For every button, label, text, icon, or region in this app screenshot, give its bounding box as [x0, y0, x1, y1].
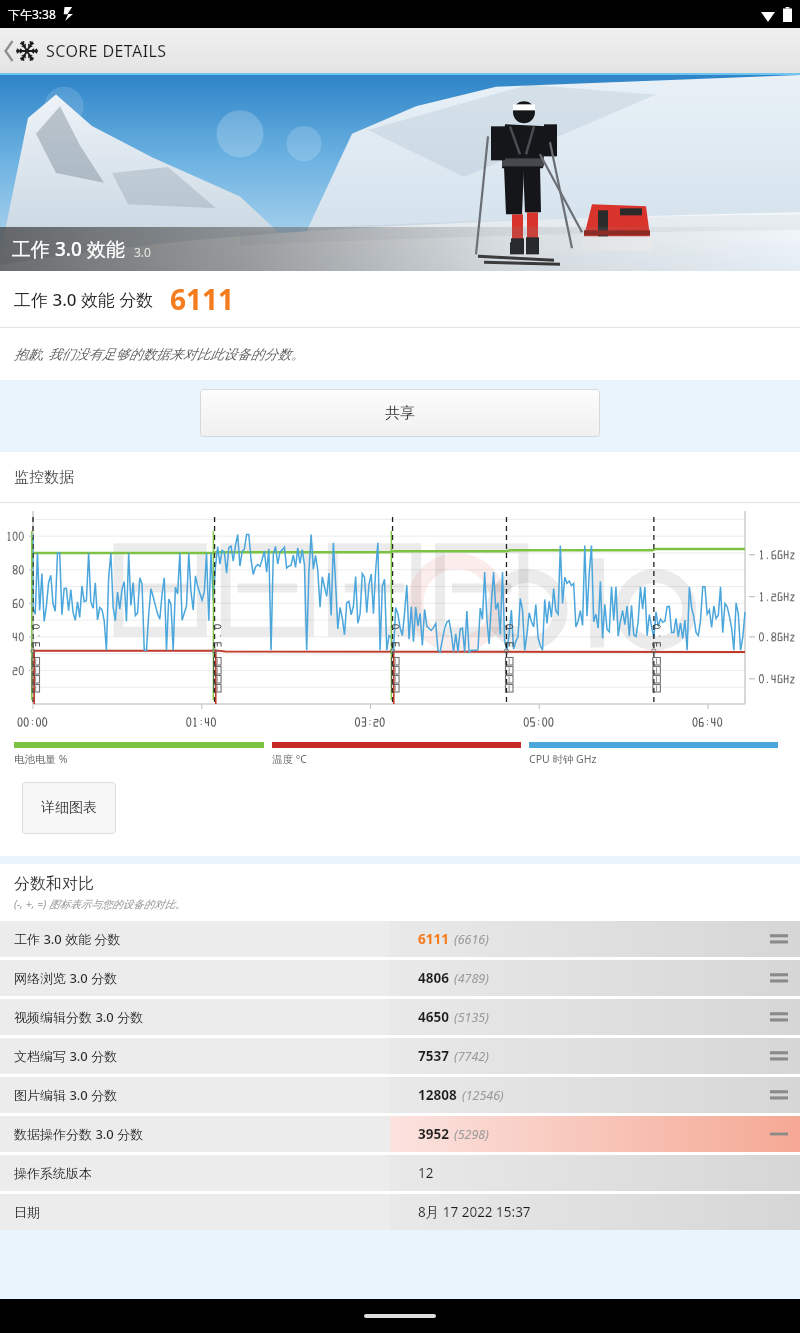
staticText: CPU 时钟 GHz: [529, 752, 597, 766]
other: Comparison equal: [770, 1127, 788, 1141]
other: Comparison equal: [770, 971, 788, 985]
button[interactable]: 图片编辑 3.0 分数: [0, 1077, 800, 1113]
staticText: 操作系统版本: [14, 1165, 92, 1181]
button[interactable]: 工作 3.0 效能 分数: [0, 921, 800, 957]
staticText: SCORE DETAILS: [46, 40, 167, 62]
staticText: 详细图表: [41, 799, 97, 817]
staticText: 3.0: [134, 244, 151, 260]
staticText: 视频编辑分数 3.0 分数: [14, 1008, 144, 1026]
button[interactable]: 操作系统版本: [0, 1155, 800, 1191]
staticText: (5135): [454, 1009, 489, 1026]
button[interactable]: 日期: [0, 1194, 800, 1230]
staticText: 图片编辑 3.0 分数: [14, 1086, 118, 1104]
staticText: (7742): [454, 1048, 489, 1065]
staticText: (4789): [454, 970, 489, 987]
other: Comparison equal: [770, 1088, 788, 1102]
staticText: (5298): [454, 1126, 489, 1143]
button[interactable]: 文档编写 3.0 分数: [0, 1038, 800, 1074]
button[interactable]: Back: [0, 36, 177, 66]
staticText: 网络浏览 3.0 分数: [14, 969, 118, 987]
other: Comparison equal: [770, 932, 788, 946]
staticText: 下午3:38: [8, 6, 56, 22]
staticText: 日期: [14, 1204, 40, 1220]
staticText: (6616): [454, 931, 489, 948]
staticText: 8月 17 2022 15:37: [418, 1203, 531, 1221]
staticText: 数据操作分数 3.0 分数: [14, 1125, 144, 1143]
staticText: 6111: [418, 930, 449, 948]
staticText: 温度 °C: [272, 752, 307, 766]
button[interactable]: 视频编辑分数 3.0 分数: [0, 999, 800, 1035]
button[interactable]: Home gesture bar: [364, 1314, 436, 1318]
staticText: 文档编写 3.0 分数: [14, 1047, 118, 1065]
staticText: 工作 3.0 效能 分数: [14, 288, 154, 311]
button[interactable]: 共享: [200, 389, 600, 437]
staticText: 工作 3.0 效能 分数: [14, 930, 121, 948]
staticText: 抱歉, 我们没有足够的数据来对比此设备的分数。: [14, 345, 305, 363]
staticText: 4806: [418, 969, 449, 987]
staticText: 监控数据: [14, 468, 74, 487]
staticText: 4650: [418, 1008, 449, 1026]
button[interactable]: 详细图表: [22, 782, 116, 834]
other: Comparison equal: [770, 1010, 788, 1024]
staticText: 电池电量 %: [14, 752, 68, 766]
staticText: (-, +, =) 图标表示与您的设备的对比。: [14, 897, 186, 911]
staticText: 3952: [418, 1125, 449, 1143]
staticText: (12546): [462, 1087, 504, 1104]
staticText: 7537: [418, 1047, 449, 1065]
staticText: 共享: [385, 404, 415, 423]
other: Comparison equal: [770, 1049, 788, 1063]
staticText: 12: [418, 1164, 434, 1182]
staticText: 12808: [418, 1086, 457, 1104]
staticText: 工作 3.0 效能: [12, 236, 125, 262]
staticText: 6111: [170, 280, 235, 318]
button[interactable]: 数据操作分数 3.0 分数: [0, 1116, 800, 1152]
staticText: 分数和对比: [14, 874, 94, 894]
button[interactable]: 网络浏览 3.0 分数: [0, 960, 800, 996]
